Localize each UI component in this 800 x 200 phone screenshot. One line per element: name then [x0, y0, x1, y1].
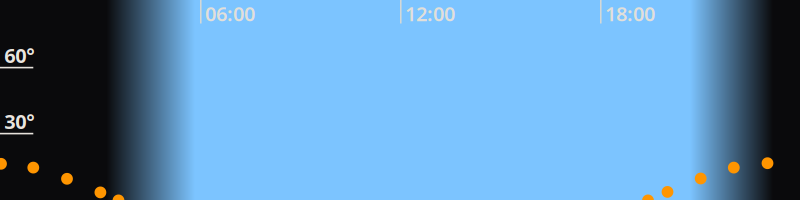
- staticText: 18:00: [605, 0, 655, 27]
- staticText: 06:00: [205, 0, 255, 27]
- staticText: 30°: [4, 108, 34, 135]
- staticText: 12:00: [405, 0, 455, 27]
- staticText: 60°: [4, 42, 34, 69]
